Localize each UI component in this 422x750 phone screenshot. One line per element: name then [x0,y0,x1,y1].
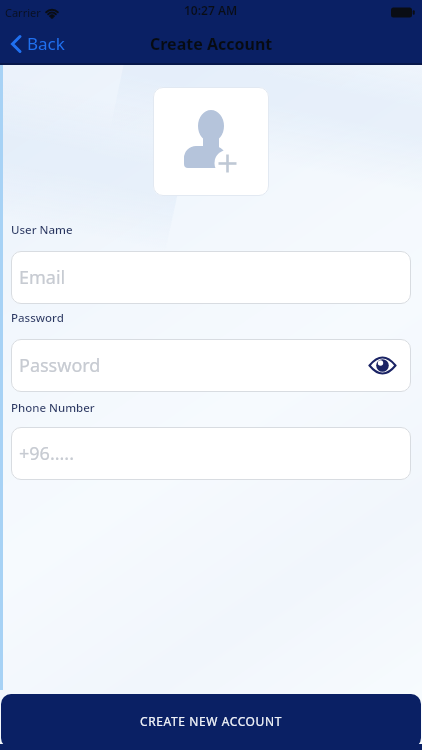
button[interactable]: +96..... [11,427,411,480]
button[interactable] [369,356,396,375]
staticText: Password [19,353,101,378]
button[interactable]: Email [11,251,411,304]
staticText: Create Account [150,33,273,55]
staticText: User Name [11,222,73,238]
button[interactable]: Back [10,32,65,55]
staticText: Back [27,32,65,55]
staticText: Carrier [5,5,41,20]
staticText: Password [11,310,64,326]
button[interactable]: CREATE NEW ACCOUNT [1,694,421,748]
button[interactable]: Password [11,339,411,392]
staticText: +96..... [19,441,75,466]
staticText: CREATE NEW ACCOUNT [140,713,282,729]
staticText: 10:27 AM [184,2,238,18]
staticText: Email [19,265,66,290]
button[interactable] [153,87,269,196]
staticText: Phone Number [11,400,95,416]
